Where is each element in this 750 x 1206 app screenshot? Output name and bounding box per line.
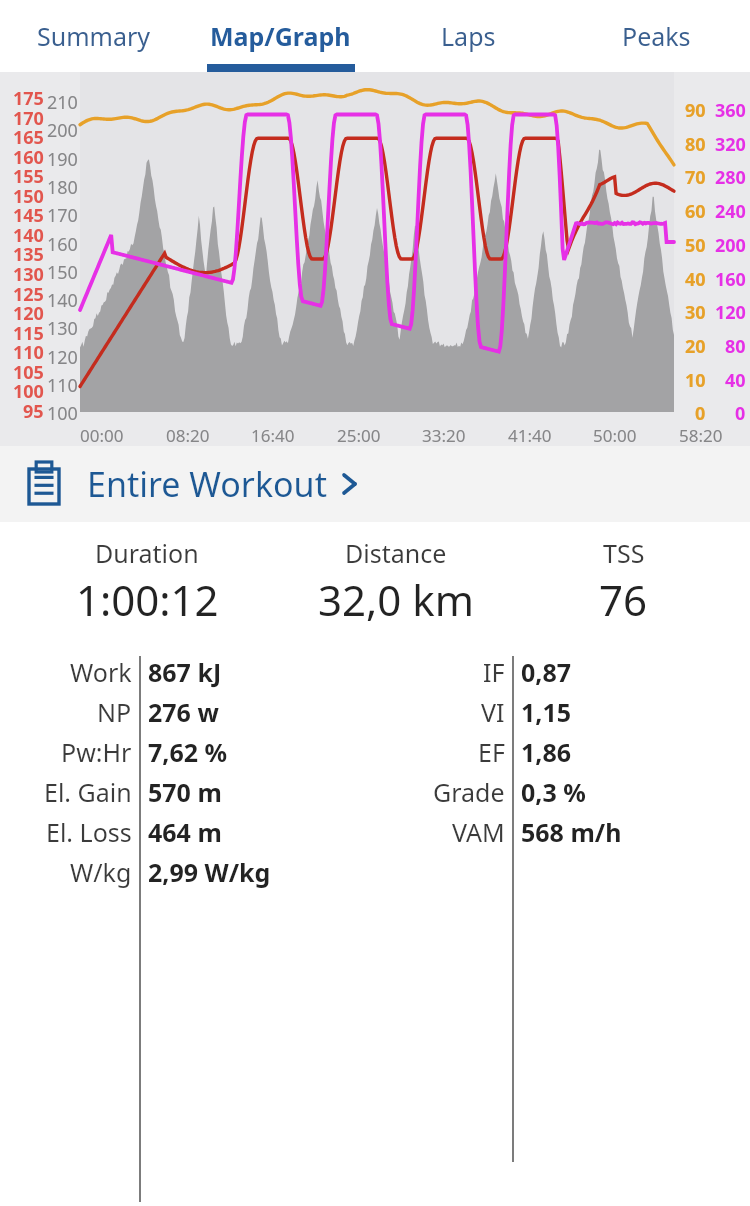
- staticText: VAM: [452, 815, 505, 849]
- staticText: 165: [13, 125, 44, 150]
- staticText: 0: [695, 401, 706, 426]
- staticText: 110: [13, 340, 44, 365]
- staticText: 10: [685, 368, 706, 393]
- staticText: 190: [47, 147, 78, 172]
- staticText: 100: [47, 401, 78, 426]
- staticText: VI: [481, 695, 505, 729]
- staticText: 00:00: [80, 424, 124, 447]
- staticText: Entire Workout: [87, 461, 327, 507]
- staticText: 16:40: [251, 424, 295, 447]
- staticText: 7,62 %: [148, 735, 228, 769]
- staticText: Laps: [441, 19, 496, 53]
- staticText: 200: [715, 233, 746, 258]
- staticText: Work: [70, 655, 132, 689]
- staticText: 110: [47, 373, 78, 398]
- staticText: 80: [725, 334, 746, 359]
- staticText: 140: [13, 223, 44, 248]
- staticText: 20: [685, 334, 706, 359]
- staticText: 280: [715, 165, 746, 190]
- staticText: Map/Graph: [210, 19, 351, 53]
- staticText: 1,86: [521, 735, 572, 769]
- staticText: 25:00: [337, 424, 381, 447]
- staticText: 570 m: [148, 775, 222, 809]
- staticText: 200: [47, 118, 78, 143]
- staticText: 1,15: [521, 695, 572, 729]
- staticText: 170: [47, 203, 78, 228]
- staticText: EF: [478, 735, 505, 769]
- staticText: 130: [47, 316, 78, 341]
- staticText: 0,3 %: [521, 775, 586, 809]
- staticText: W/kg: [70, 855, 132, 889]
- staticText: 867 kJ: [148, 655, 222, 689]
- staticText: 50: [685, 233, 706, 258]
- staticText: 160: [47, 232, 78, 257]
- staticText: 1:00:12: [76, 571, 219, 628]
- staticText: 50:00: [593, 424, 637, 447]
- staticText: 170: [13, 106, 44, 131]
- staticText: 76: [599, 571, 648, 628]
- staticText: 80: [685, 132, 706, 157]
- staticText: Distance: [345, 536, 447, 570]
- staticText: 70: [685, 165, 706, 190]
- staticText: 120: [715, 300, 746, 325]
- staticText: 240: [715, 199, 746, 224]
- staticText: 130: [13, 262, 44, 287]
- staticText: 135: [13, 242, 44, 267]
- staticText: El. Gain: [44, 775, 132, 809]
- staticText: Grade: [433, 775, 505, 809]
- staticText: 33:20: [422, 424, 466, 447]
- staticText: 08:20: [166, 424, 210, 447]
- staticText: 160: [13, 145, 44, 170]
- staticText: 120: [47, 345, 78, 370]
- staticText: Summary: [37, 19, 151, 53]
- staticText: 30: [685, 300, 706, 325]
- other: Workout details: [27, 462, 61, 506]
- staticText: El. Loss: [46, 815, 132, 849]
- staticText: 40: [725, 368, 746, 393]
- staticText: 464 m: [148, 815, 222, 849]
- staticText: 32,0 km: [318, 571, 474, 628]
- staticText: 150: [13, 184, 44, 209]
- button[interactable]: Laps: [374, 0, 562, 72]
- staticText: 320: [715, 132, 746, 157]
- staticText: 155: [13, 164, 44, 189]
- staticText: 276 w: [148, 695, 219, 729]
- staticText: 360: [715, 98, 746, 123]
- staticText: 40: [685, 267, 706, 292]
- staticText: 175: [13, 86, 44, 111]
- button[interactable]: Map/Graph: [187, 0, 374, 72]
- staticText: 100: [13, 379, 44, 404]
- staticText: Duration: [95, 536, 199, 570]
- staticText: Peaks: [622, 19, 691, 53]
- staticText: 180: [47, 175, 78, 200]
- staticText: 0,87: [521, 655, 572, 689]
- staticText: 145: [13, 203, 44, 228]
- button[interactable]: Peaks: [562, 0, 750, 72]
- staticText: 160: [715, 267, 746, 292]
- staticText: 105: [13, 360, 44, 385]
- staticText: 60: [685, 199, 706, 224]
- staticText: 150: [47, 260, 78, 285]
- staticText: 58:20: [679, 424, 723, 447]
- staticText: IF: [483, 655, 505, 689]
- button[interactable]: Summary: [0, 0, 187, 72]
- staticText: 0: [735, 401, 746, 426]
- staticText: 210: [47, 90, 78, 115]
- staticText: 140: [47, 288, 78, 313]
- staticText: 90: [685, 98, 706, 123]
- staticText: 568 m/h: [521, 815, 622, 849]
- staticText: 120: [13, 301, 44, 326]
- staticText: 41:40: [508, 424, 552, 447]
- staticText: 95: [23, 399, 44, 424]
- staticText: Pw:Hr: [61, 735, 132, 769]
- staticText: 2,99 W/kg: [148, 855, 271, 889]
- staticText: NP: [97, 695, 132, 729]
- button[interactable]: Workout details: [0, 446, 750, 522]
- staticText: 125: [13, 282, 44, 307]
- staticText: 115: [13, 321, 44, 346]
- staticText: TSS: [603, 536, 645, 570]
